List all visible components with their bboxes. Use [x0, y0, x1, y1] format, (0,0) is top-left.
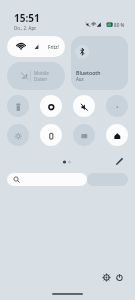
- button[interactable]: Streamen: [73, 124, 95, 146]
- button[interactable]: Bildschirm drehen: [40, 124, 62, 146]
- button[interactable]: Bearbeiten: [113, 155, 126, 168]
- staticText: Aus: [76, 76, 84, 82]
- button[interactable]: Taschenlampe: [7, 95, 29, 117]
- staticText: Mobile: [34, 70, 49, 76]
- staticText: 80 %: [114, 22, 125, 28]
- button[interactable]: Ausschalten: [113, 271, 126, 284]
- button[interactable]: Smart Home: [106, 124, 128, 146]
- button[interactable]: Aufnahme: [40, 95, 62, 117]
- button[interactable]: Einstellungen: [100, 271, 113, 284]
- button[interactable]: Bluetooth: [71, 36, 128, 90]
- button[interactable]: [7, 173, 87, 186]
- staticText: Do., 2. Apr.: [14, 25, 37, 31]
- button[interactable]: Fritz!: [7, 36, 65, 57]
- staticText: Daten: [34, 76, 48, 82]
- button[interactable]: Helligkeit: [7, 124, 29, 146]
- button[interactable]: Mobile: [7, 62, 65, 90]
- button[interactable]: Mehr: [106, 95, 128, 117]
- button[interactable]: Stumm: [73, 95, 95, 117]
- button[interactable]: Mehr: [87, 173, 128, 186]
- staticText: 15:51: [14, 11, 40, 25]
- staticText: Fritz!: [48, 44, 59, 50]
- staticText: Bluetooth: [76, 69, 101, 76]
